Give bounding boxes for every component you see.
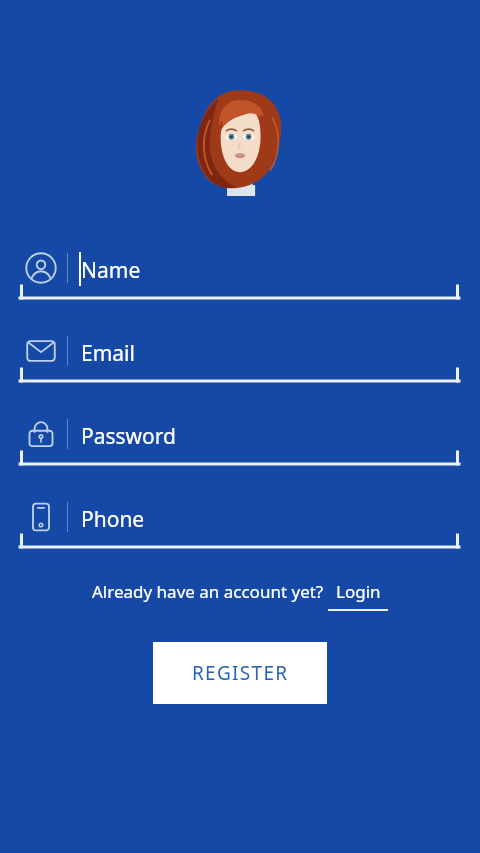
button[interactable]: Login [336, 580, 381, 603]
staticText: Phone [81, 505, 145, 534]
staticText: Password [81, 422, 176, 451]
staticText: Already have an account yet? [92, 580, 328, 603]
staticText: Login [336, 580, 381, 603]
button[interactable]: Password input field [0, 406, 480, 472]
button[interactable]: Email input field [0, 323, 480, 389]
staticText: REGISTER [192, 660, 289, 686]
button[interactable]: Phone input field [0, 489, 480, 555]
button[interactable]: Name input field [0, 240, 480, 306]
staticText: Email [81, 339, 135, 368]
button[interactable]: REGISTER [153, 642, 327, 704]
staticText: Name [81, 256, 141, 285]
